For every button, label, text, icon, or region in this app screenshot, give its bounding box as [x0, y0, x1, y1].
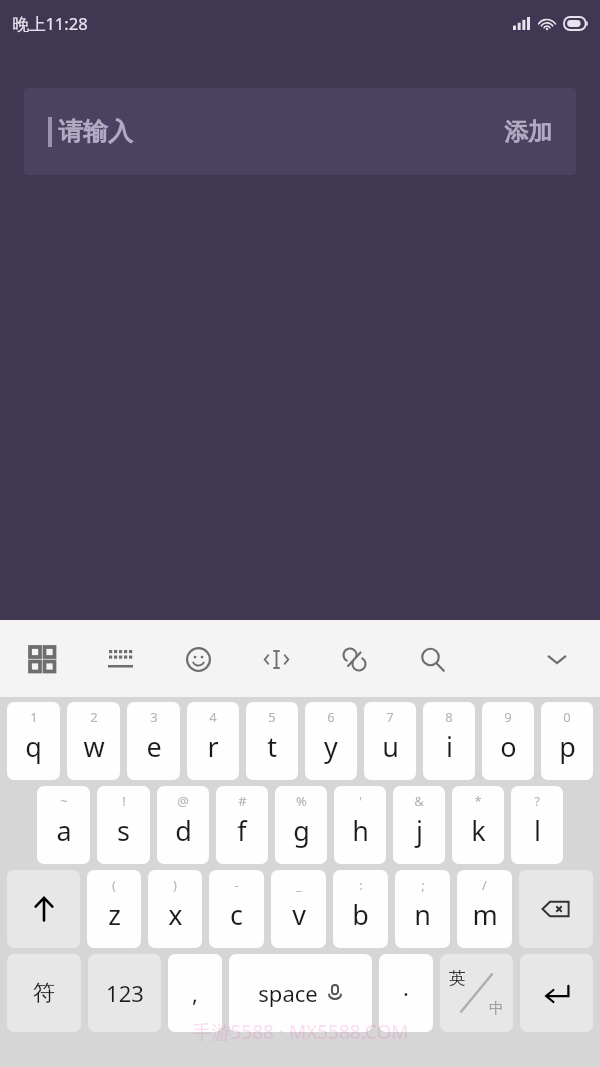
- staticText: 0: [563, 708, 571, 726]
- button[interactable]: 9: [482, 702, 534, 780]
- button[interactable]: :: [333, 870, 388, 948]
- staticText: 5: [268, 708, 276, 726]
- staticText: 中: [489, 999, 504, 1018]
- staticText: 4: [209, 708, 217, 726]
- staticText: :: [359, 876, 363, 894]
- staticText: m: [472, 896, 498, 933]
- staticText: 2: [90, 708, 98, 726]
- staticText: j: [416, 812, 423, 849]
- button[interactable]: ·: [379, 954, 433, 1032]
- button[interactable]: 3: [127, 702, 180, 780]
- button[interactable]: Hide keyboard: [534, 636, 580, 682]
- staticText: ,: [192, 978, 198, 1008]
- button[interactable]: Move cursor: [256, 639, 296, 679]
- staticText: ?: [534, 792, 540, 810]
- button[interactable]: ): [148, 870, 202, 948]
- button[interactable]: 7: [364, 702, 416, 780]
- staticText: 3: [150, 708, 158, 726]
- staticText: 手游5588 · MX5588.COM: [192, 1019, 409, 1045]
- staticText: !: [122, 792, 126, 810]
- button[interactable]: *: [452, 786, 504, 864]
- staticText: #: [238, 792, 247, 810]
- staticText: 英: [449, 968, 466, 989]
- button[interactable]: ~: [37, 786, 90, 864]
- button[interactable]: Enter: [520, 954, 593, 1032]
- button[interactable]: 请输入: [24, 88, 576, 175]
- staticText: -: [234, 876, 239, 894]
- button[interactable]: Apps: [22, 639, 62, 679]
- button[interactable]: Keyboard layout: [100, 639, 140, 679]
- staticText: space: [258, 978, 318, 1008]
- button[interactable]: 6: [305, 702, 357, 780]
- button[interactable]: !: [97, 786, 150, 864]
- button[interactable]: ;: [395, 870, 450, 948]
- button[interactable]: _: [271, 870, 326, 948]
- button[interactable]: (: [87, 870, 141, 948]
- staticText: v: [292, 896, 306, 933]
- staticText: u: [382, 728, 399, 765]
- button[interactable]: #: [216, 786, 268, 864]
- button[interactable]: 2: [67, 702, 120, 780]
- staticText: e: [146, 728, 162, 765]
- staticText: ·: [403, 978, 409, 1008]
- staticText: k: [471, 812, 486, 849]
- staticText: ~: [60, 792, 68, 810]
- button[interactable]: %: [275, 786, 327, 864]
- staticText: 6: [327, 708, 335, 726]
- staticText: q: [25, 728, 42, 765]
- staticText: l: [534, 812, 541, 849]
- staticText: f: [237, 812, 247, 849]
- button[interactable]: 添加: [480, 105, 576, 159]
- button[interactable]: Emoji: [178, 639, 218, 679]
- staticText: 符: [33, 979, 55, 1007]
- button[interactable]: /: [457, 870, 512, 948]
- staticText: &: [414, 792, 424, 810]
- staticText: ;: [421, 876, 425, 894]
- button[interactable]: 5: [246, 702, 298, 780]
- staticText: d: [175, 812, 192, 849]
- staticText: *: [474, 792, 482, 810]
- staticText: x: [168, 896, 183, 933]
- staticText: @: [177, 792, 189, 810]
- button[interactable]: 8: [423, 702, 475, 780]
- button[interactable]: Switch language: [440, 954, 513, 1032]
- button[interactable]: &: [393, 786, 445, 864]
- button[interactable]: Backspace: [519, 870, 593, 948]
- staticText: 1: [30, 708, 38, 726]
- staticText: i: [446, 728, 453, 765]
- button[interactable]: ?: [511, 786, 563, 864]
- button[interactable]: space: [229, 954, 372, 1032]
- button[interactable]: 0: [541, 702, 593, 780]
- staticText: t: [267, 728, 277, 765]
- staticText: s: [117, 812, 130, 849]
- staticText: g: [293, 812, 310, 849]
- staticText: n: [414, 896, 431, 933]
- staticText: a: [56, 812, 72, 849]
- button[interactable]: ,: [168, 954, 222, 1032]
- staticText: p: [559, 728, 576, 765]
- staticText: 8: [445, 708, 453, 726]
- button[interactable]: 123: [88, 954, 161, 1032]
- button[interactable]: 1: [7, 702, 60, 780]
- staticText: w: [83, 728, 105, 765]
- staticText: ): [173, 876, 177, 894]
- button[interactable]: Search: [412, 639, 452, 679]
- staticText: 晚上11:28: [12, 12, 88, 35]
- button[interactable]: 4: [187, 702, 239, 780]
- staticText: h: [352, 812, 369, 849]
- staticText: %: [296, 792, 307, 810]
- staticText: 9: [504, 708, 512, 726]
- staticText: _: [296, 876, 302, 894]
- button[interactable]: Clipboard: [334, 639, 374, 679]
- staticText: 123: [106, 978, 144, 1008]
- button[interactable]: -: [209, 870, 264, 948]
- staticText: 请输入: [58, 116, 133, 147]
- staticText: (: [112, 876, 116, 894]
- staticText: c: [230, 896, 243, 933]
- staticText: ': [359, 792, 362, 810]
- button[interactable]: @: [157, 786, 209, 864]
- button[interactable]: ': [334, 786, 386, 864]
- button[interactable]: Shift: [7, 870, 80, 948]
- staticText: 添加: [504, 117, 552, 147]
- button[interactable]: 符: [7, 954, 81, 1032]
